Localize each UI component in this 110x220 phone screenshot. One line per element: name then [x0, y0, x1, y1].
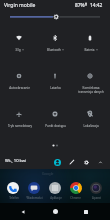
staticText: Autoobracanie	[9, 86, 30, 90]
staticText: 33g	[15, 48, 21, 52]
button[interactable]	[2, 104, 37, 130]
staticText: Aparat	[92, 196, 101, 200]
button[interactable]: Settings	[79, 155, 93, 169]
staticText: Aplikacje	[50, 196, 62, 200]
button[interactable]: Wiadomości	[24, 181, 45, 203]
staticText: Virgin mobile	[4, 2, 36, 9]
button[interactable]	[38, 66, 73, 92]
button[interactable]: Edit	[65, 155, 79, 169]
button[interactable]	[2, 66, 37, 92]
staticText: Google	[42, 171, 54, 176]
button[interactable]	[2, 29, 37, 55]
staticText: Tryb samolotowy	[8, 124, 32, 128]
staticText: Telefon	[9, 196, 19, 200]
staticText: Latarka	[50, 86, 61, 90]
staticText: Komórkowa transmisja danych	[78, 86, 104, 94]
button[interactable]: Recents	[75, 203, 97, 220]
button[interactable]: Account	[50, 155, 64, 169]
button[interactable]	[73, 66, 108, 92]
button[interactable]	[73, 104, 108, 130]
staticText: Chrome	[70, 196, 81, 200]
button[interactable]: Collapse	[93, 155, 107, 169]
button[interactable]: Back	[12, 203, 34, 220]
button[interactable]: Home	[44, 203, 66, 220]
button[interactable]: Aparat	[86, 181, 107, 203]
staticText: Punkt dostępu	[45, 124, 66, 128]
staticText: Wt., 10 kwi	[5, 158, 27, 164]
button[interactable]: Chrome	[65, 181, 86, 203]
button[interactable]	[38, 104, 73, 130]
staticText: Lokalizacja	[83, 124, 99, 128]
button[interactable]: Aplikacje	[45, 181, 66, 203]
button[interactable]	[38, 29, 73, 55]
staticText: Bluetooth	[47, 48, 61, 52]
button[interactable]: Telefon	[3, 181, 24, 203]
staticText: 87%	[75, 2, 85, 9]
button[interactable]	[73, 29, 108, 55]
staticText: Bateria	[84, 48, 95, 52]
staticText: Wiadomości	[26, 196, 43, 200]
staticText: 14:42	[90, 2, 103, 9]
